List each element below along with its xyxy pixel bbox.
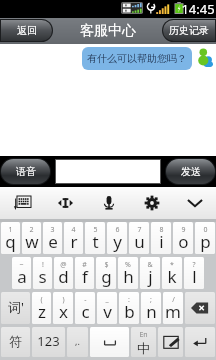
button[interactable]: 历史记录 [163,20,215,41]
button[interactable]: Backspace [185,292,215,324]
button[interactable]: 有什么可以帮助您吗？ [82,47,192,70]
staticText: 7 [137,225,142,235]
button[interactable]: ) [53,292,73,324]
staticText: r [70,230,78,253]
staticText: ~ [19,260,24,270]
staticText: 0 [203,225,208,235]
button[interactable]: ? [184,257,204,289]
button[interactable]: En [131,327,156,357]
staticText: 3 [50,225,55,235]
staticText: En [139,330,148,340]
staticText: - [84,295,87,305]
staticText: 8 [159,225,164,235]
staticText: k [167,265,177,288]
staticText: v [103,300,112,323]
button[interactable]: 9 [173,222,193,254]
staticText: s [38,265,47,288]
button[interactable]: $ [96,257,116,289]
staticText: l [192,265,197,288]
staticText: a [17,265,27,288]
staticText: ; [150,295,152,305]
button[interactable]: # [75,257,94,289]
button[interactable]: 符 [1,327,30,357]
button[interactable]: & [140,257,160,289]
staticText: n [146,300,157,323]
button[interactable]: 2 [22,222,41,254]
staticText: w [25,230,39,253]
button[interactable]: - [75,292,95,324]
staticText: o [178,230,189,253]
staticText: & [147,260,153,270]
staticText: b [124,300,135,323]
staticText: 5 [93,225,98,235]
staticText: ? [192,260,196,270]
staticText: 2 [29,225,34,235]
staticText: 14:45 [181,0,215,18]
button[interactable]: 发送 [166,159,215,184]
staticText: _ [105,295,109,305]
staticText: 6 [115,225,120,235]
button[interactable]: * [162,257,182,289]
staticText: # [82,260,87,270]
button[interactable]: 7 [129,222,149,254]
staticText: : [128,295,130,305]
button[interactable]: ! [33,257,52,289]
staticText: j [148,265,153,288]
button[interactable]: 语音 [1,159,50,184]
staticText: d [58,265,69,288]
button[interactable]: Switch keyboard [0,187,44,219]
staticText: ( [40,295,43,305]
button[interactable]: Space [90,327,129,357]
button[interactable]: @ [54,257,73,289]
button[interactable]: / [163,292,183,324]
button[interactable]: 返回 [1,20,52,41]
button[interactable]: ( [32,292,51,324]
staticText: $ [104,260,109,270]
staticText: c [81,300,90,323]
button[interactable]: 0 [195,222,215,254]
staticText: 客服中心 [80,22,136,40]
staticText: h [123,265,134,288]
button[interactable]: Hide keyboard [173,187,216,219]
staticText: e [48,230,58,253]
button[interactable]: 3 [43,222,62,254]
button[interactable]: 8 [151,222,171,254]
staticText: 123 [37,332,60,350]
button[interactable]: 123 [32,327,65,357]
staticText: u [134,230,145,253]
staticText: 4 [71,225,76,235]
staticText: 词' [8,298,24,316]
staticText: 符 [9,333,22,349]
button[interactable]: 6 [107,222,127,254]
staticText: f [82,265,88,288]
button[interactable]: ~ [12,257,31,289]
button[interactable]: 4 [64,222,83,254]
button[interactable]: : [119,292,139,324]
button[interactable]: 5 [85,222,105,254]
staticText: t [92,230,99,253]
button[interactable]: 1 [1,222,20,254]
staticText: 9 [181,225,186,235]
staticText: z [38,300,46,323]
button[interactable]: Enter [185,327,215,357]
button[interactable]: ; [141,292,161,324]
button[interactable]: 词' [1,292,30,324]
staticText: 历史记录 [169,24,209,37]
button[interactable]: Voice input [87,187,130,219]
staticText: 语音 [16,165,36,178]
button[interactable]: Move cursor [44,187,87,219]
staticText: 1 [8,225,13,235]
staticText: ! [42,260,44,270]
button[interactable]: Settings [130,187,173,219]
button[interactable]: % [118,257,138,289]
staticText: i [159,230,164,253]
staticText: g [101,265,112,288]
staticText: p [200,230,211,253]
staticText: m [165,300,181,323]
button[interactable]: _ [97,292,117,324]
button[interactable]: Handwriting [158,327,183,357]
staticText: / [172,295,175,305]
button[interactable]: ,. [67,327,88,357]
staticText: q [5,230,16,253]
